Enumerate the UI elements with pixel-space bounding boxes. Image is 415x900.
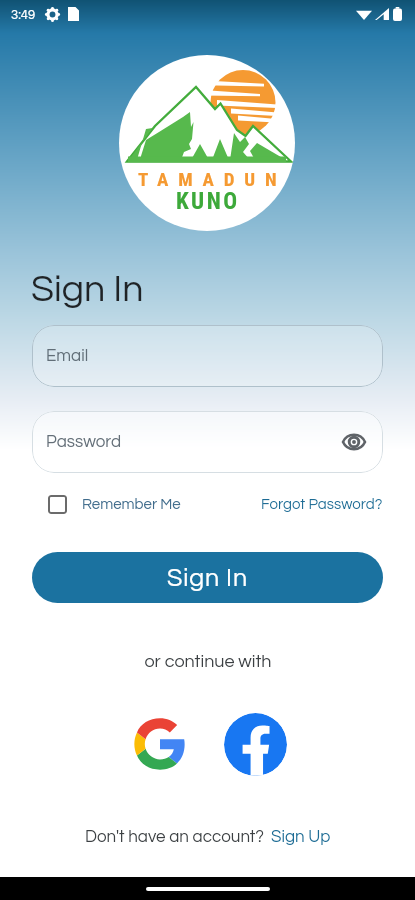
staticText: Remember Me	[82, 497, 181, 512]
button[interactable]: Sign Up	[271, 828, 331, 846]
staticText: 3:49	[11, 8, 36, 21]
button[interactable]: Forgot Password?	[261, 497, 383, 512]
button[interactable]: Sign in with Google	[132, 716, 188, 772]
staticText: Password	[46, 433, 122, 451]
staticText: Sign In	[167, 565, 248, 591]
button[interactable]: Password	[32, 411, 383, 473]
button[interactable]: Remember Me	[48, 495, 181, 514]
staticText: Don't have an account?	[85, 828, 265, 846]
staticText: or continue with	[144, 652, 272, 671]
button[interactable]: Sign in with Facebook	[224, 713, 287, 776]
staticText: Sign In	[31, 270, 144, 309]
button[interactable]: Show password	[341, 429, 367, 455]
staticText: Forgot Password?	[261, 497, 383, 512]
button[interactable]: Email	[32, 325, 383, 387]
staticText: KUNO	[176, 188, 240, 215]
button[interactable]: Sign In	[32, 552, 383, 603]
staticText: Email	[46, 347, 89, 365]
staticText: Sign Up	[271, 828, 331, 846]
staticText: TAMADUN	[138, 168, 287, 190]
